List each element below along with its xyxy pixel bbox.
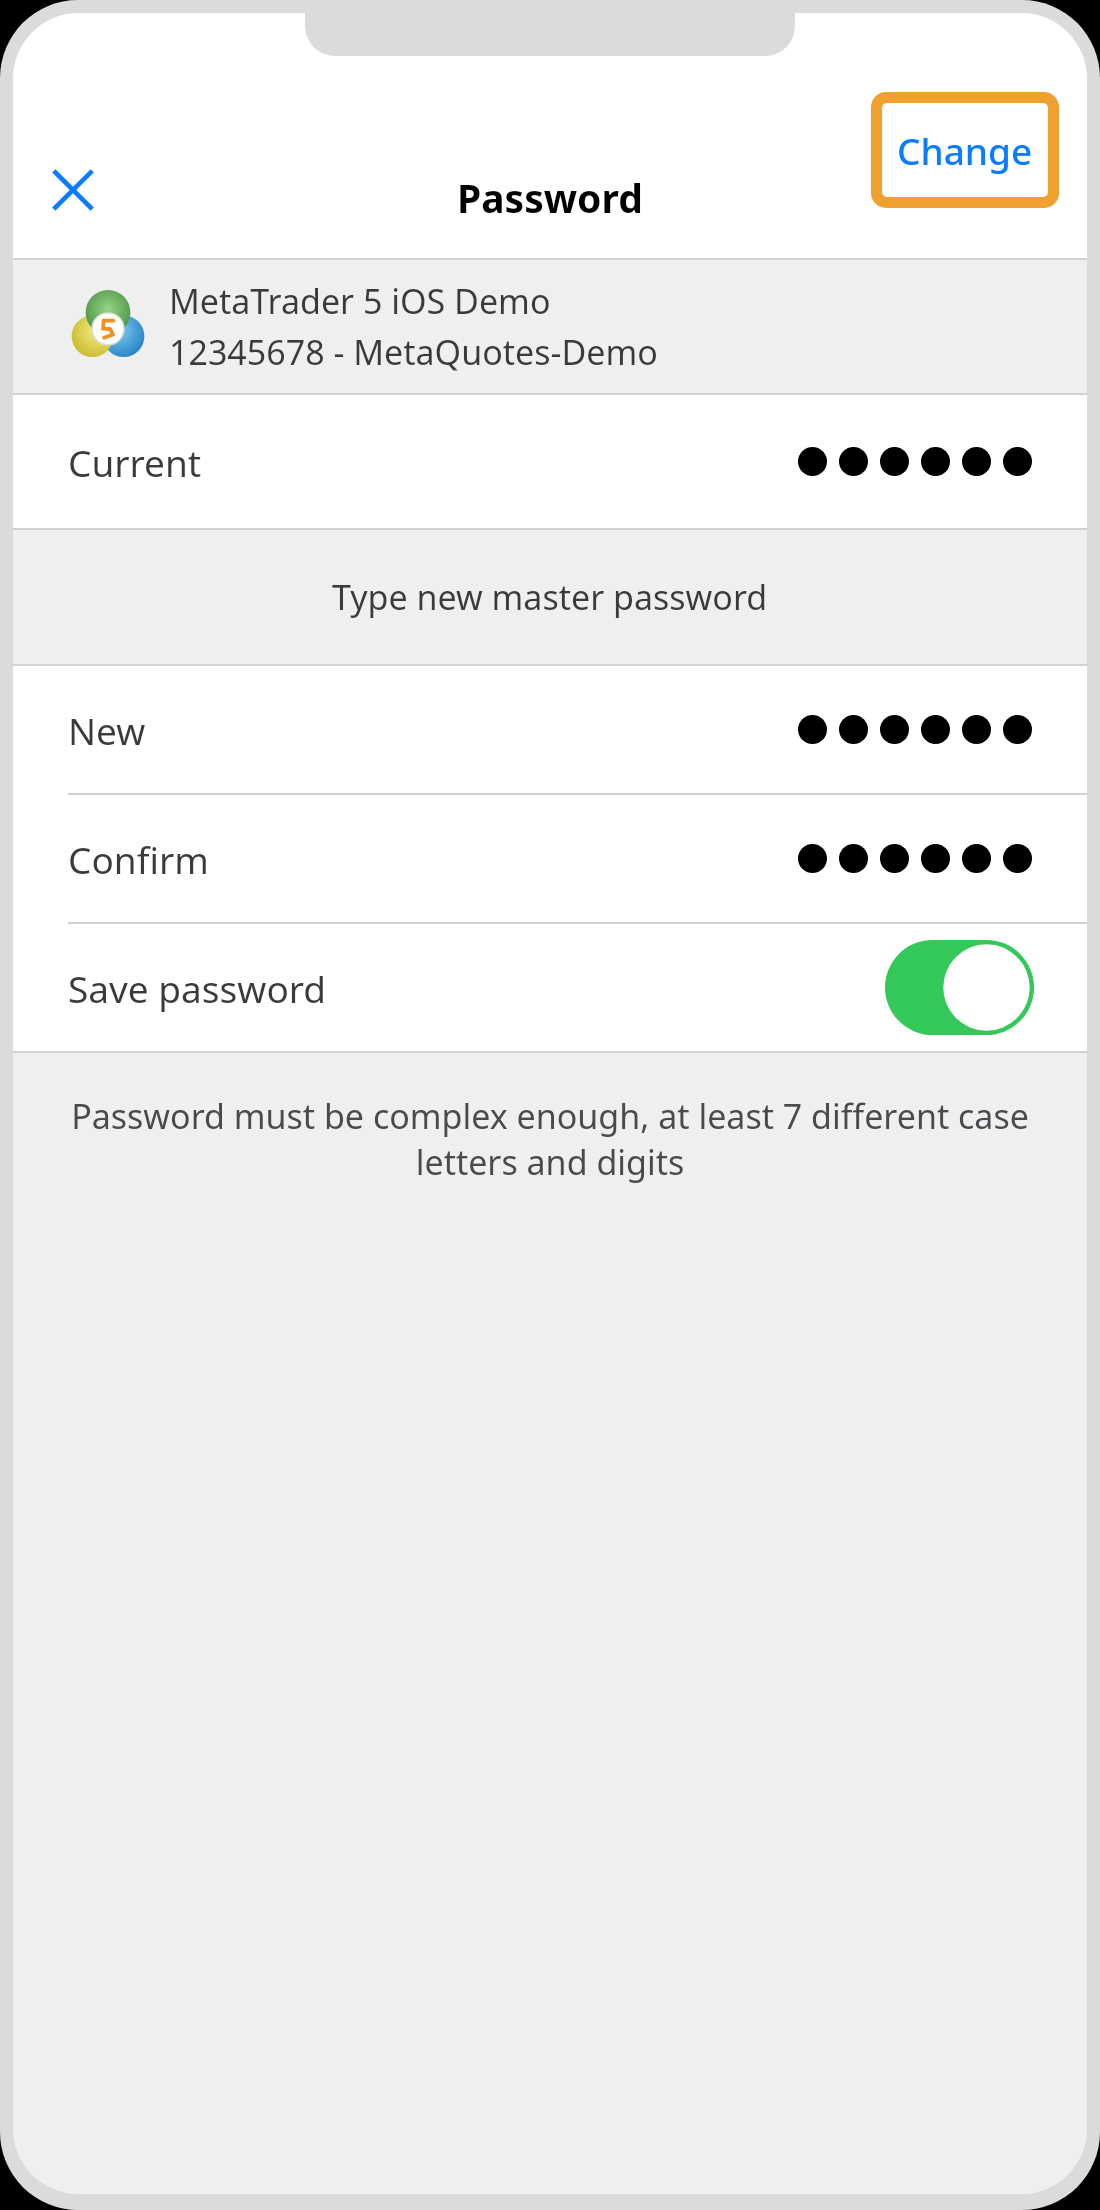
staticText: Password must be complex enough, at leas… [51, 1093, 1049, 1185]
staticText: MetaTrader 5 iOS Demo [169, 278, 551, 324]
staticText: Password [457, 171, 643, 224]
staticText: New [68, 705, 146, 755]
staticText: Current [68, 437, 202, 487]
button[interactable]: Confirm [13, 795, 1087, 922]
button[interactable]: MetaTrader 5 iOS Demo [13, 260, 1087, 393]
staticText: Change [897, 125, 1033, 175]
button[interactable]: Current [13, 395, 1087, 528]
button[interactable]: Save password [13, 924, 1087, 1051]
staticText: Type new master password [332, 574, 768, 620]
button[interactable]: Close [31, 148, 115, 232]
button[interactable]: New [13, 666, 1087, 793]
button[interactable]: Save password [885, 940, 1034, 1035]
staticText: Save password [68, 963, 327, 1013]
staticText: 12345678 - MetaQuotes-Demo [169, 329, 658, 375]
button[interactable]: Change [882, 103, 1048, 197]
staticText: Confirm [68, 834, 209, 884]
